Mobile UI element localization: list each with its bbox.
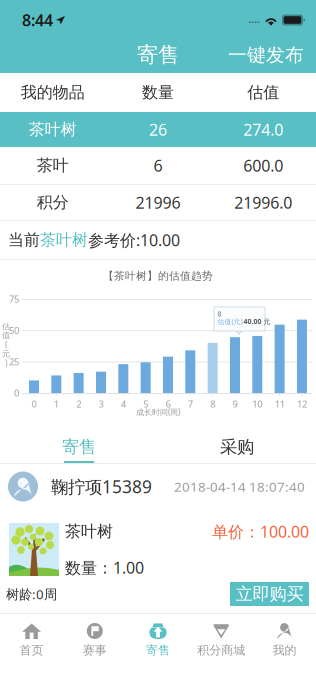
- button[interactable]: 一键发布: [214, 40, 304, 70]
- staticText: 600.0: [243, 155, 283, 176]
- staticText: 鞠拧项15389: [51, 475, 152, 498]
- staticText: 5: [143, 398, 148, 410]
- staticText: 3: [98, 398, 103, 410]
- staticText: 茶叶树: [65, 522, 113, 541]
- staticText: 立即购买: [235, 583, 303, 605]
- staticText: 估: [2, 322, 10, 331]
- button[interactable]: 积分商城: [190, 614, 253, 684]
- staticText: 茶叶树: [29, 120, 77, 139]
- staticText: 赛事: [83, 643, 107, 658]
- staticText: 1: [54, 398, 59, 410]
- staticText: 75: [9, 293, 19, 305]
- staticText: 一键发布: [228, 43, 304, 66]
- button[interactable]: 首页: [0, 614, 63, 684]
- staticText: 4: [121, 398, 126, 410]
- staticText: 采购: [220, 436, 254, 458]
- staticText: 估值(元): [217, 317, 242, 326]
- staticText: 首页: [20, 643, 44, 658]
- staticText: 元: [2, 349, 10, 359]
- staticText: 10: [252, 398, 262, 410]
- staticText: 我的: [272, 643, 296, 658]
- staticText: 12: [297, 398, 307, 410]
- staticText: 2018-04-14 18:07:40: [174, 478, 305, 495]
- staticText: 11: [275, 398, 285, 410]
- staticText: 6: [153, 155, 162, 176]
- staticText: 当前: [8, 230, 40, 250]
- button[interactable]: 寄售: [126, 614, 190, 684]
- staticText: 2: [76, 398, 81, 410]
- staticText: 积分商城: [197, 643, 245, 658]
- staticText: 40.00 元: [243, 317, 270, 326]
- staticText: 参考价:10.00: [88, 229, 180, 251]
- staticText: 数量：1.00: [65, 557, 144, 578]
- staticText: 21996: [135, 192, 180, 213]
- staticText: 寄售: [146, 643, 170, 658]
- staticText: 寄售: [62, 436, 96, 458]
- staticText: 数量: [142, 83, 174, 102]
- button[interactable]: 寄售: [0, 420, 158, 463]
- staticText: 8: [210, 398, 215, 410]
- staticText: 茶叶: [37, 156, 69, 175]
- staticText: 25: [9, 355, 19, 368]
- staticText: 单价：100.00: [212, 521, 309, 542]
- staticText: ): [5, 358, 7, 368]
- staticText: 7: [188, 398, 193, 410]
- staticText: 8:44: [22, 9, 53, 31]
- button[interactable]: 我的: [253, 614, 316, 684]
- staticText: 估值: [247, 83, 279, 102]
- staticText: (: [5, 339, 7, 350]
- staticText: 50: [9, 324, 19, 336]
- staticText: 8: [217, 310, 221, 318]
- staticText: 【茶叶树】的估值趋势: [103, 269, 213, 282]
- staticText: 寄售: [137, 42, 179, 68]
- staticText: 274.0: [243, 119, 283, 140]
- staticText: 成长时间(周): [136, 407, 180, 417]
- staticText: 值: [2, 330, 10, 340]
- staticText: 26: [149, 119, 167, 140]
- staticText: 9: [232, 398, 237, 410]
- staticText: 21996.0: [234, 192, 292, 213]
- staticText: 我的物品: [21, 83, 85, 102]
- button[interactable]: 赛事: [63, 614, 126, 684]
- button[interactable]: 采购: [158, 420, 316, 463]
- staticText: 树龄:0周: [6, 585, 57, 603]
- staticText: 茶叶树: [40, 230, 88, 250]
- staticText: 积分: [37, 193, 69, 212]
- staticText: 0: [14, 387, 19, 399]
- staticText: 0: [31, 398, 36, 410]
- button[interactable]: 立即购买: [230, 582, 309, 606]
- staticText: 6: [165, 398, 170, 410]
